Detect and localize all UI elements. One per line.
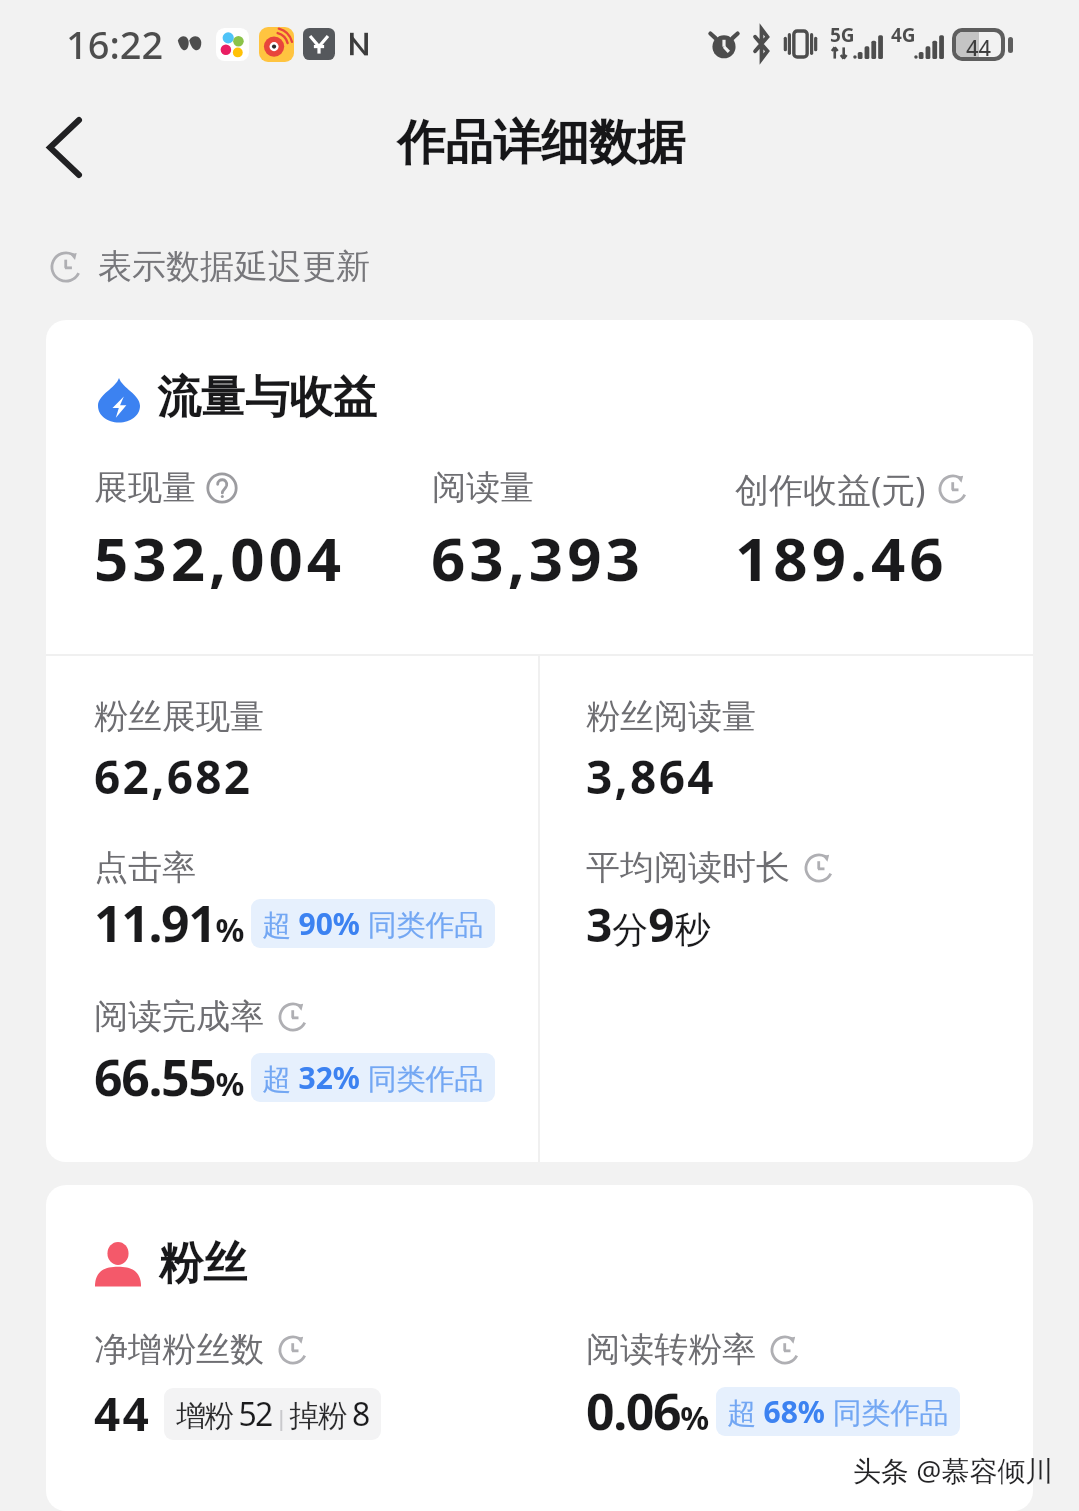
staticText: 189.46 [735,517,948,599]
staticText: 流量与收益 [157,370,377,425]
staticText: 44 [94,1382,152,1445]
staticText: 阅读量 [432,466,534,509]
staticText: 44 [966,32,992,57]
staticText: 11.91% [94,889,243,957]
staticText: 创作收益(元) [735,466,926,512]
staticText: 3,864 [586,745,716,808]
staticText: 增粉 52 | 掉粉 8 [176,1392,369,1436]
staticText: 16:22 [66,18,164,70]
staticText: 阅读完成率 [94,995,264,1038]
staticText: 4G [891,22,914,48]
staticText: 66.55% [94,1043,243,1111]
staticText: 62,682 [94,745,253,808]
staticText: 粉丝 [159,1236,247,1291]
staticText: 超 68% 同类作品 [727,1391,949,1432]
staticText: 阅读转粉率 [586,1328,756,1371]
staticText: 粉丝展现量 [94,695,264,738]
button[interactable]: Back [18,101,110,193]
staticText: 63,393 [431,517,644,599]
staticText: 0.06% [586,1377,708,1445]
staticText: 超 90% 同类作品 [262,903,484,944]
staticText: 5G [830,22,853,48]
staticText: 表示数据延迟更新 [98,245,370,288]
staticText: 平均阅读时长 [586,846,790,889]
staticText: 作品详细数据 [397,113,685,173]
staticText: 粉丝阅读量 [586,695,756,738]
staticText: 3分9秒 [586,893,711,956]
staticText: 点击率 [94,846,196,889]
staticText: 532,004 [94,517,346,599]
staticText: 净增粉丝数 [94,1328,264,1371]
staticText: 超 32% 同类作品 [262,1057,484,1098]
staticText: 头条 @慕容倾川 [853,1451,1054,1489]
staticText: 展现量 [94,466,196,509]
